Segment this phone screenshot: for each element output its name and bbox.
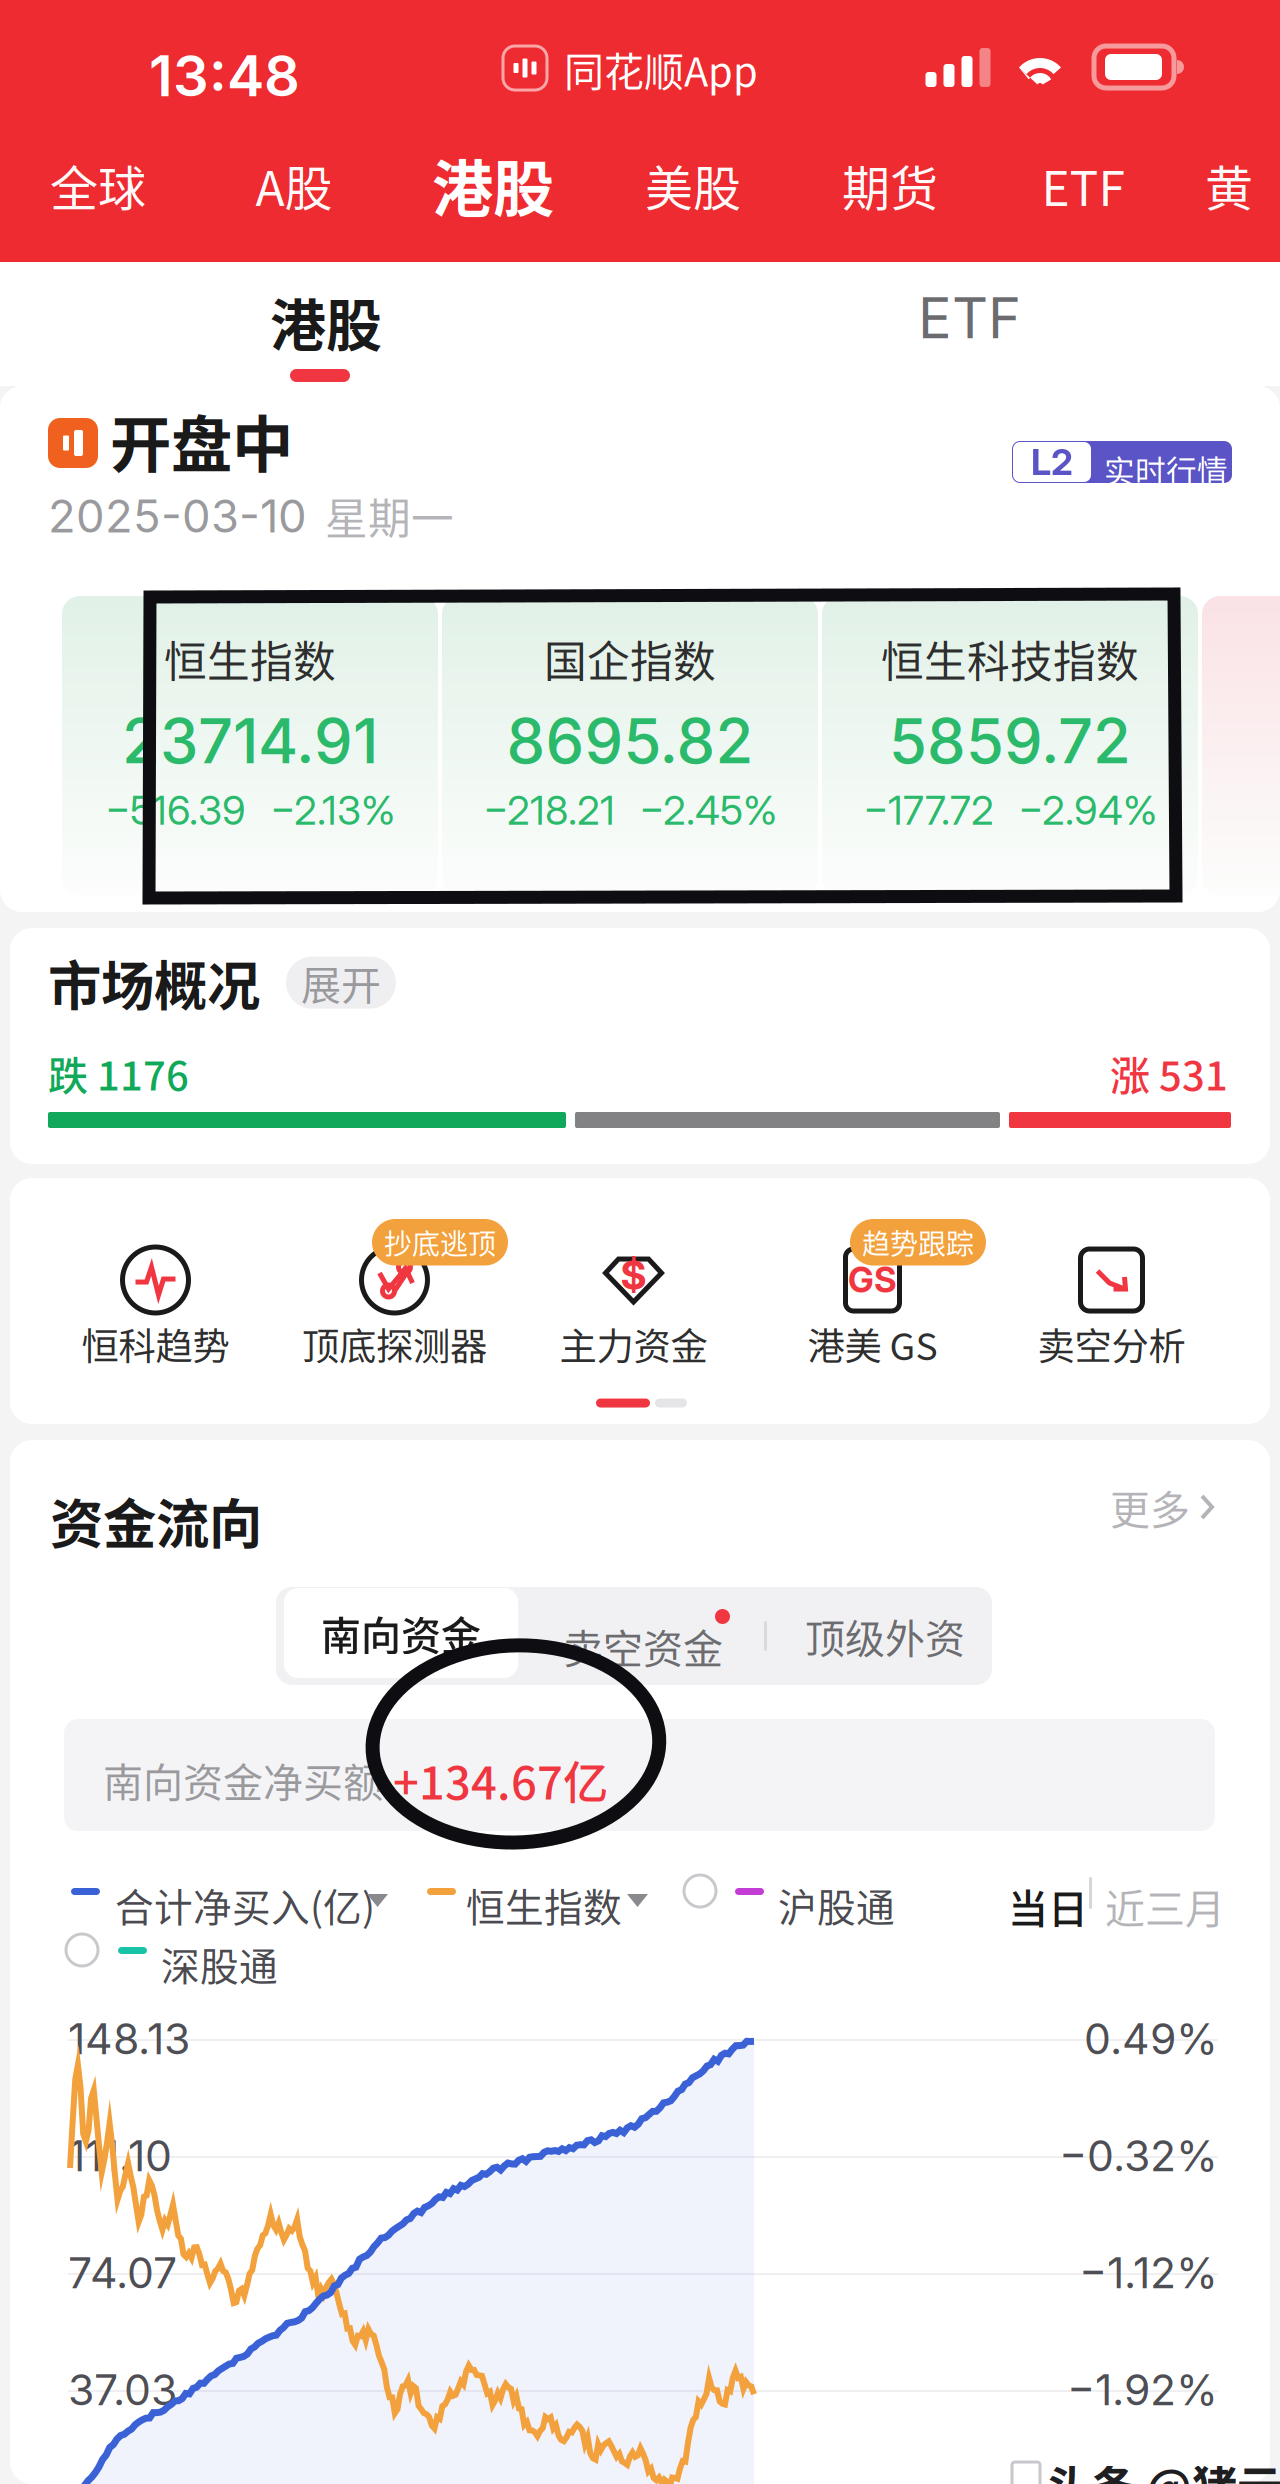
staticText: −0.32% — [1059, 2130, 1218, 2182]
staticText: 南向资金 — [321, 1604, 481, 1662]
staticText: 南向资金净买额 — [103, 1751, 383, 1809]
staticText: 实时行情 — [1104, 447, 1228, 491]
button[interactable]: 恒生指数 — [62, 596, 438, 896]
staticText: 抄底逃顶 — [384, 1222, 496, 1262]
button[interactable]: L2 实时行情 — [1012, 441, 1232, 483]
staticText: 13:48 — [149, 42, 300, 110]
staticText: 近三月 — [1105, 1877, 1225, 1935]
staticText: 港股 — [432, 141, 554, 229]
staticText: −2.45% — [639, 786, 777, 834]
staticText: 卖空资金 — [563, 1617, 723, 1675]
staticText: 展开 — [301, 954, 381, 1012]
staticText: 深股通 — [161, 1936, 278, 1992]
button[interactable]: GS — [753, 1236, 992, 1386]
staticText: 恒生指数 — [466, 1877, 622, 1933]
staticText: 合计净买入(亿) — [115, 1877, 375, 1933]
staticText: 2025-03-10 — [48, 488, 307, 543]
staticText: 跌 1176 — [48, 1044, 189, 1102]
button[interactable]: 美股 — [594, 124, 792, 246]
staticText: −1.92% — [1067, 2364, 1218, 2416]
staticText: A股 — [255, 150, 332, 220]
button[interactable]: A — [1202, 596, 1280, 896]
staticText: 头条 @猪云千 — [1046, 2452, 1280, 2484]
staticText: 5859.72 — [889, 704, 1131, 778]
button[interactable]: $ — [514, 1236, 753, 1386]
staticText: 卖空分析 — [1037, 1317, 1185, 1371]
staticText: 当日 — [1008, 1877, 1088, 1935]
staticText: 恒生指数 — [164, 628, 336, 690]
staticText: 23714.91 — [122, 704, 378, 778]
staticText: 星期一 — [325, 485, 454, 547]
staticText: 资金流向 — [50, 1482, 262, 1559]
staticText: −1.12% — [1079, 2247, 1218, 2299]
staticText: ETF — [918, 284, 1021, 352]
button[interactable]: 港股 — [392, 124, 594, 246]
staticText: 市场概况 — [48, 944, 260, 1021]
staticText: 美股 — [645, 150, 741, 220]
button[interactable]: 顶底探测器 — [275, 1236, 514, 1386]
button[interactable]: A股 — [196, 124, 392, 246]
button[interactable]: 期货 — [792, 124, 988, 246]
button[interactable]: ETF — [640, 262, 1280, 385]
staticText: 港美 GS — [807, 1317, 937, 1371]
button[interactable]: ETF — [988, 124, 1178, 246]
button[interactable]: 卖空分析 — [992, 1236, 1231, 1386]
button[interactable]: 南向资金 — [284, 1588, 518, 1678]
button[interactable]: 港股 — [0, 262, 640, 385]
staticText: 港股 — [270, 281, 382, 362]
staticText: −2.72% — [1061, 2481, 1218, 2484]
staticText: 沪股通 — [778, 1877, 895, 1933]
button[interactable]: 恒生科技指数 — [822, 596, 1198, 896]
staticText: −218.21 — [483, 786, 615, 834]
staticText: 更多 — [1110, 1478, 1190, 1536]
button[interactable]: 卖空资金 — [518, 1587, 758, 1685]
staticText: 顶底探测器 — [302, 1317, 487, 1371]
staticText: ETF — [1041, 150, 1124, 220]
staticText: 黄 — [1205, 150, 1253, 220]
staticText: 8695.82 — [506, 704, 753, 778]
staticText: 国企指数 — [544, 628, 716, 690]
staticText: 0.00 — [68, 2481, 159, 2484]
button[interactable]: 展开 — [286, 957, 396, 1009]
staticText: 全球 — [50, 150, 146, 220]
staticText: 37.03 — [68, 2364, 177, 2416]
staticText: 涨 531 — [1110, 1044, 1228, 1102]
staticText: 恒生科技指数 — [881, 628, 1139, 690]
staticText: 148.13 — [68, 2013, 190, 2065]
staticText: 主力资金 — [559, 1317, 707, 1371]
button[interactable]: 恒科趋势 — [36, 1236, 275, 1386]
staticText: 111.10 — [68, 2130, 172, 2182]
staticText: 顶级外资 — [805, 1607, 965, 1665]
staticText: −2.13% — [270, 786, 395, 834]
button[interactable]: 更多 — [1110, 1482, 1216, 1532]
staticText: −516.39 — [105, 786, 246, 834]
button[interactable]: 国企指数 — [442, 596, 818, 896]
staticText: −2.94% — [1018, 786, 1157, 834]
staticText: +134.67亿 — [393, 1747, 608, 1813]
staticText: 74.07 — [68, 2247, 177, 2299]
staticText: GS — [848, 1259, 897, 1301]
staticText: 同花顺App — [564, 40, 758, 98]
staticText: 恒科趋势 — [81, 1317, 229, 1371]
staticText: L2 — [1031, 440, 1073, 484]
staticText: 期货 — [842, 150, 938, 220]
staticText: 趋势跟踪 — [862, 1222, 974, 1262]
staticText: 0.49% — [1084, 2013, 1218, 2065]
staticText: $ — [620, 1251, 646, 1299]
button[interactable]: 顶级外资 — [778, 1587, 992, 1685]
staticText: 开盘中 — [110, 396, 293, 485]
button[interactable]: 功能入口第 1 页，共 2 页 — [596, 1388, 687, 1418]
staticText: −177.72 — [863, 786, 994, 834]
button[interactable]: 黄 — [1178, 124, 1280, 246]
button[interactable]: 全球 — [0, 124, 196, 246]
